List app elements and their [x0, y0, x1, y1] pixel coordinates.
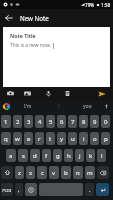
- staticText: 5: [49, 118, 53, 126]
- button[interactable]: 4: [35, 115, 44, 128]
- staticText: p: [104, 135, 108, 143]
- button[interactable]: e: [24, 132, 33, 145]
- staticText: f: [45, 152, 48, 160]
- button[interactable]: .: [85, 183, 94, 196]
- staticText: d: [33, 152, 37, 160]
- staticText: 79%: [85, 2, 95, 8]
- button[interactable]: 9: [90, 115, 99, 128]
- button[interactable]: ?123: [1, 183, 13, 196]
- button[interactable]: k: [86, 149, 95, 162]
- button[interactable]: n: [73, 166, 83, 179]
- button[interactable]: 6: [57, 115, 66, 128]
- button[interactable]: b: [61, 166, 71, 179]
- staticText: 1:58: [101, 2, 111, 8]
- staticText: c: [41, 169, 44, 177]
- button[interactable]: c: [37, 166, 47, 179]
- staticText: z: [18, 169, 21, 177]
- staticText: .: [89, 186, 91, 194]
- staticText: 9: [93, 118, 97, 126]
- staticText: k: [89, 152, 93, 160]
- button[interactable]: you: [73, 100, 102, 113]
- button[interactable]: h: [64, 149, 73, 162]
- button[interactable]: Shift: [1, 166, 13, 179]
- button[interactable]: z: [15, 166, 24, 179]
- staticText: e: [27, 135, 31, 143]
- staticText: s: [22, 152, 25, 160]
- button[interactable]: Attach file: [63, 89, 72, 98]
- staticText: 0: [104, 118, 108, 126]
- staticText: 4: [38, 118, 42, 126]
- button[interactable]: s: [18, 149, 28, 162]
- staticText: Note Title: [10, 32, 36, 39]
- button[interactable]: Send: [96, 88, 108, 100]
- staticText: r: [38, 135, 41, 143]
- button[interactable]: 1: [1, 115, 11, 128]
- button[interactable]: x: [26, 166, 35, 179]
- button[interactable]: f: [42, 149, 51, 162]
- button[interactable]: I'm: [12, 100, 44, 113]
- button[interactable]: Record audio: [44, 89, 53, 98]
- staticText: 7: [71, 118, 75, 126]
- button[interactable]: w: [13, 132, 22, 145]
- button[interactable]: q: [1, 132, 11, 145]
- staticText: u: [71, 135, 75, 143]
- button[interactable]: 2: [13, 115, 22, 128]
- staticText: 8: [82, 118, 86, 126]
- button[interactable]: 8: [79, 115, 88, 128]
- staticText: y: [60, 135, 64, 143]
- button[interactable]: Voice typing: [25, 183, 37, 196]
- button[interactable]: 7: [68, 115, 77, 128]
- button[interactable]: Voice input: [102, 102, 111, 111]
- button[interactable]: m: [85, 166, 95, 179]
- button[interactable]: Backspace: [97, 166, 109, 179]
- staticText: you: [83, 103, 92, 110]
- staticText: i: [83, 135, 85, 143]
- button[interactable]: 3: [24, 115, 33, 128]
- staticText: q: [4, 135, 8, 143]
- button[interactable]: l: [97, 149, 106, 162]
- staticText: h: [67, 152, 71, 160]
- button[interactable]: j: [75, 149, 84, 162]
- button[interactable]: Take photo: [6, 89, 15, 98]
- button[interactable]: 5: [46, 115, 55, 128]
- staticText: j: [79, 152, 81, 160]
- staticText: b: [64, 169, 68, 177]
- staticText: g: [56, 152, 60, 160]
- staticText: t: [49, 135, 52, 143]
- staticText: o: [93, 135, 97, 143]
- staticText: x: [29, 169, 33, 177]
- button[interactable]: o: [90, 132, 99, 145]
- button[interactable]: Back: [0, 9, 17, 26]
- staticText: m: [87, 169, 93, 177]
- button[interactable]: Space: [39, 183, 83, 196]
- staticText: ?123: [2, 187, 12, 193]
- staticText: I: [58, 103, 60, 110]
- button[interactable]: p: [101, 132, 110, 145]
- button[interactable]: r: [35, 132, 44, 145]
- staticText: n: [76, 169, 80, 177]
- button[interactable]: d: [30, 149, 40, 162]
- staticText: 3: [27, 118, 31, 126]
- button[interactable]: Google Search: [3, 103, 10, 110]
- button[interactable]: 0: [101, 115, 110, 128]
- staticText: This is a new note.: [10, 42, 52, 49]
- staticText: 2: [16, 118, 20, 126]
- staticText: I'm: [24, 103, 32, 110]
- button[interactable]: t: [46, 132, 55, 145]
- button[interactable]: a: [6, 149, 16, 162]
- button[interactable]: Add image: [23, 89, 32, 98]
- button[interactable]: i: [79, 132, 88, 145]
- button[interactable]: g: [53, 149, 62, 162]
- button[interactable]: u: [68, 132, 77, 145]
- button[interactable]: y: [57, 132, 66, 145]
- button[interactable]: ,: [15, 183, 23, 196]
- staticText: l: [101, 152, 103, 160]
- button[interactable]: Enter: [96, 183, 109, 196]
- staticText: v: [52, 169, 56, 177]
- staticText: ,: [18, 186, 20, 194]
- staticText: a: [9, 152, 13, 160]
- staticText: 1: [4, 118, 8, 126]
- button[interactable]: v: [49, 166, 59, 179]
- staticText: 6: [60, 118, 64, 126]
